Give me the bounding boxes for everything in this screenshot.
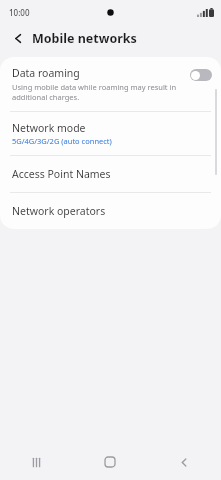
- button[interactable]: Network mode: [0, 112, 221, 155]
- button[interactable]: Data roaming switch, off: [190, 69, 212, 81]
- button[interactable]: Back: [7, 27, 29, 49]
- staticText: Mobile networks: [32, 30, 137, 47]
- staticText: 10:00: [9, 7, 30, 18]
- staticText: Data roaming: [12, 66, 80, 80]
- button[interactable]: Back: [147, 444, 221, 480]
- staticText: Network operators: [12, 204, 106, 218]
- staticText: Using mobile data while roaming may resu…: [12, 82, 185, 102]
- button[interactable]: Recent apps: [0, 444, 73, 480]
- button[interactable]: Data roaming: [0, 57, 221, 111]
- button[interactable]: Access Point Names: [0, 156, 221, 192]
- staticText: Access Point Names: [12, 167, 111, 181]
- button[interactable]: Network operators: [0, 193, 221, 229]
- button[interactable]: Home: [73, 444, 147, 480]
- staticText: 5G/4G/3G/2G (auto connect): [12, 136, 112, 146]
- staticText: Network mode: [12, 121, 86, 135]
